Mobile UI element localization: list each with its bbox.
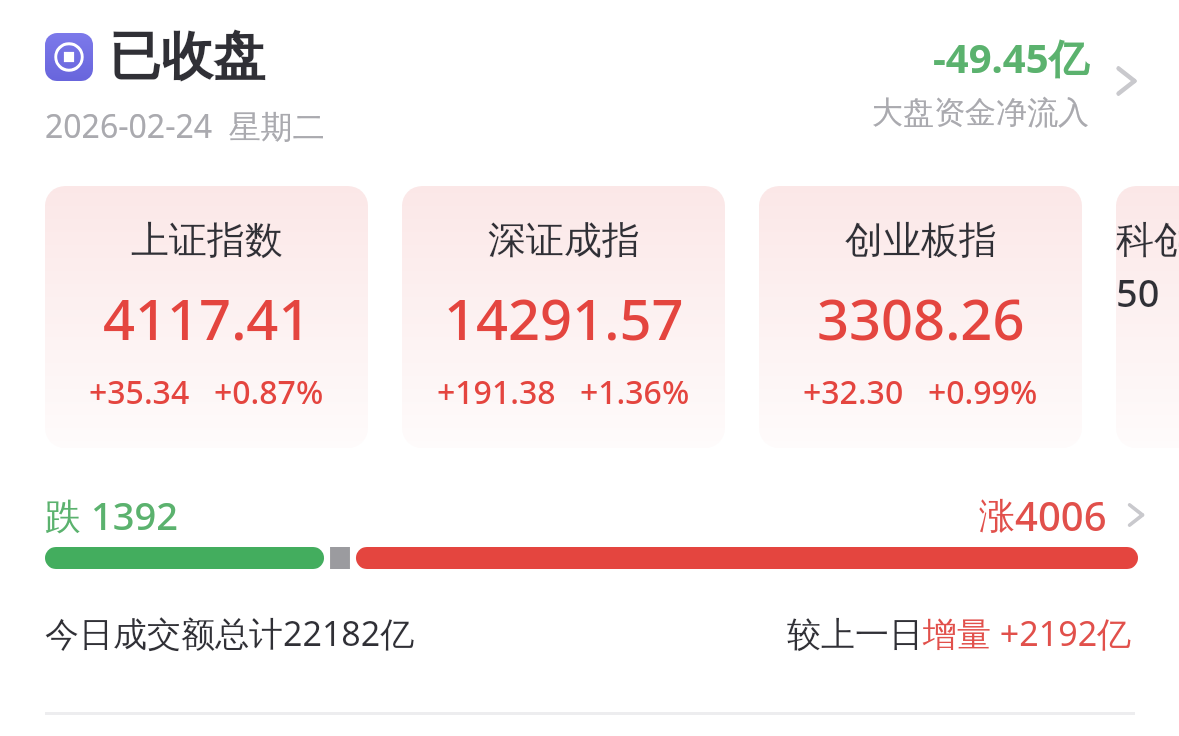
staticText: 跌 [45,491,91,540]
button[interactable]: 科创50 [1116,186,1179,448]
staticText: 1392 [91,489,178,541]
staticText: 4117.41 [103,280,311,356]
staticText: 科创50 [1116,216,1179,318]
staticText: -49.45亿 [933,30,1089,85]
button[interactable]: -49.45亿 [800,26,1145,136]
staticText: 大盘资金净流入 [872,93,1089,132]
staticText: +32.30 [803,370,904,414]
staticText: +35.34 [89,370,190,414]
staticText: 14291.57 [444,280,684,356]
staticText: 已收盘 [109,24,265,90]
staticText: 创业板指 [845,216,997,264]
staticText: +1.36% [580,370,690,414]
staticText: 深证成指 [488,216,640,264]
other: More [1103,60,1145,102]
staticText: 上证指数 [131,216,283,264]
staticText: 3308.26 [817,280,1025,356]
other: Market closed [45,33,93,81]
staticText: 2026-02-24 星期二 [45,104,325,148]
staticText: +191.38 [437,370,556,414]
button[interactable]: 上证指数 [45,186,368,448]
button[interactable]: 创业板指 [759,186,1082,448]
staticText: 涨 [979,493,1015,538]
button[interactable]: 跌 [0,486,1179,544]
staticText: +0.99% [928,370,1038,414]
staticText: 较上一日增量 +2192亿 [787,610,1132,656]
staticText: 4006 [1015,488,1107,542]
staticText: +0.87% [214,370,324,414]
button[interactable]: 深证成指 [402,186,725,448]
staticText: 今日成交额总计22182亿 [45,610,415,656]
